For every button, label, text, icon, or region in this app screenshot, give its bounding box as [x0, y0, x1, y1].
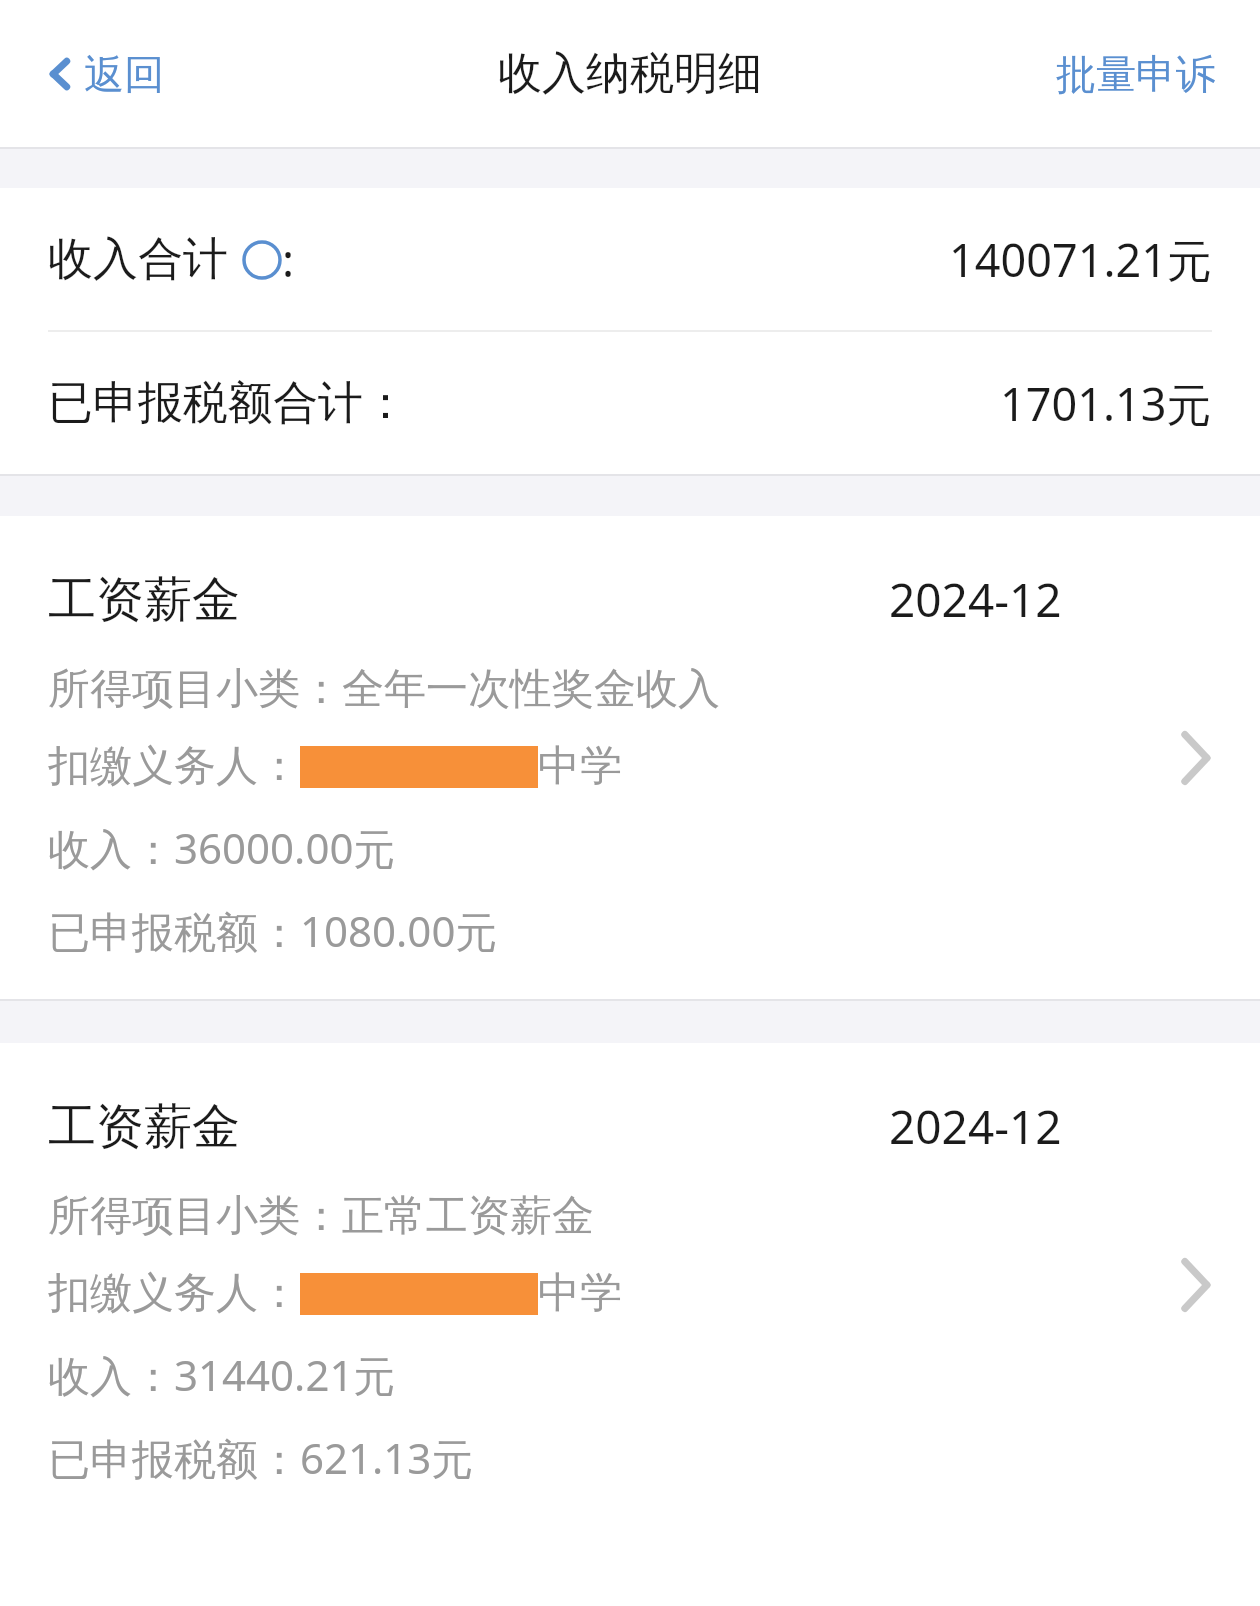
staticText: 中学 [538, 740, 622, 793]
button[interactable]: 收入合计 [0, 188, 1260, 330]
staticText: 140071.21元 [949, 229, 1212, 290]
staticText: 所得项目小类：正常工资薪金 [48, 1190, 594, 1243]
staticText: 收入合计 [48, 231, 228, 288]
button[interactable]: 返回 [40, 39, 172, 109]
staticText: 扣缴义务人： [48, 1267, 300, 1320]
staticText: 已申报税额合计： [48, 375, 408, 432]
button[interactable]: 批量申诉 [1050, 39, 1222, 109]
staticText: 批量申诉 [1056, 49, 1216, 99]
staticText: 已申报税额：621.13元 [48, 1429, 474, 1486]
staticText: 收入纳税明细 [498, 46, 762, 101]
staticText: 工资薪金 [48, 1097, 240, 1157]
staticText: 所得项目小类：全年一次性奖金收入 [48, 663, 720, 716]
staticText: 收入：36000.00元 [48, 819, 396, 876]
staticText: 工资薪金 [48, 570, 240, 630]
button[interactable]: 工资薪金 [0, 1043, 1260, 1526]
other: Help about total income [242, 240, 282, 280]
staticText: 已申报税额：1080.00元 [48, 902, 498, 959]
staticText: 2024-12 [889, 568, 1062, 631]
staticText: 扣缴义务人： [48, 740, 300, 793]
staticText: 返回 [84, 49, 164, 99]
button[interactable]: 工资薪金 [0, 516, 1260, 999]
other: View detail [1178, 730, 1212, 786]
other: View detail [1178, 1257, 1212, 1313]
button[interactable]: 已申报税额合计： [0, 332, 1260, 474]
staticText: 收入：31440.21元 [48, 1346, 396, 1403]
staticText: 2024-12 [889, 1095, 1062, 1158]
staticText: 中学 [538, 1267, 622, 1320]
staticText: : [282, 229, 295, 290]
staticText: 1701.13元 [1000, 373, 1212, 434]
